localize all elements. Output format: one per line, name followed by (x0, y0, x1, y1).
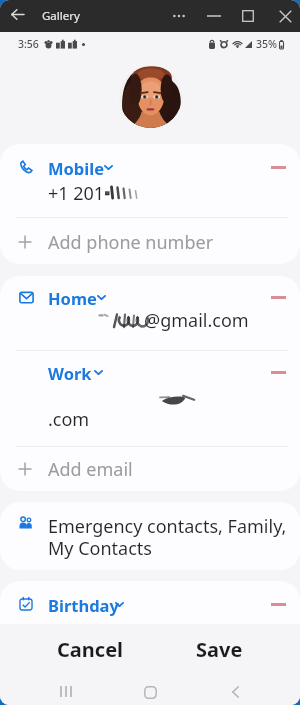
button[interactable]: Close (269, 0, 300, 32)
button[interactable]: Add phone number (0, 224, 300, 258)
button[interactable]: Add email (0, 451, 300, 485)
button[interactable]: Remove (265, 592, 292, 616)
button[interactable]: Birthday (0, 594, 300, 620)
staticText: @gmail.com (144, 308, 249, 332)
button[interactable]: Emergency contacts, Family, My Contacts (0, 502, 300, 570)
button[interactable]: Mobile (0, 157, 300, 183)
button[interactable]: Minimize (197, 0, 231, 32)
button[interactable]: Back (215, 668, 256, 705)
button[interactable]: Remove (265, 285, 292, 309)
button[interactable]: Home (0, 287, 300, 313)
button[interactable]: Cancel (26, 624, 155, 668)
button[interactable]: Work (0, 362, 300, 388)
staticText: Add phone number (48, 230, 214, 255)
staticText: Cancel (57, 636, 124, 663)
button[interactable]: Recents (45, 668, 86, 705)
button[interactable]: Remove (265, 155, 292, 179)
staticText: Home (48, 287, 97, 309)
staticText: Emergency contacts, Family, My Contacts (48, 514, 288, 560)
staticText: 3:56 (18, 37, 39, 51)
staticText: Save (196, 636, 243, 663)
button[interactable]: Contact photo (119, 65, 182, 128)
button[interactable]: Maximize (231, 0, 264, 32)
button[interactable]: Home (130, 668, 171, 705)
button[interactable]: Back (5, 0, 29, 32)
staticText: 35% (256, 37, 277, 51)
staticText: Gallery (42, 8, 80, 24)
staticText: Mobile (48, 157, 105, 179)
button[interactable]: Remove (265, 360, 292, 384)
staticText: +1 201- (48, 181, 110, 205)
button[interactable]: Save (155, 624, 284, 668)
staticText: Work (48, 362, 92, 384)
button[interactable]: More options (162, 0, 195, 32)
staticText: .com (48, 407, 90, 431)
staticText: Birthday (48, 594, 119, 616)
staticText: Add email (48, 457, 133, 482)
